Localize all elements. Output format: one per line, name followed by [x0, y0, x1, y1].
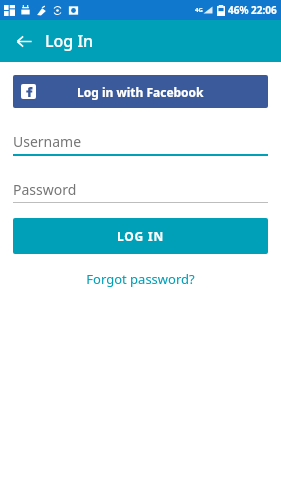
staticText: 4G — [195, 6, 203, 14]
button[interactable]: Back — [10, 27, 38, 55]
button[interactable]: Forgot password? — [76, 264, 205, 294]
staticText: Log In — [45, 30, 94, 52]
button[interactable]: Log in with Facebook — [13, 75, 268, 108]
staticText: Password — [13, 180, 77, 199]
button[interactable]: LOG IN — [13, 218, 268, 254]
button[interactable]: Password — [13, 178, 268, 203]
button[interactable]: Username — [13, 130, 268, 156]
staticText: Log in with Facebook — [77, 84, 204, 100]
staticText: 46% 22:06 — [228, 3, 277, 17]
staticText: Username — [13, 132, 82, 151]
staticText: LOG IN — [117, 228, 164, 244]
staticText: Forgot password? — [86, 270, 195, 288]
